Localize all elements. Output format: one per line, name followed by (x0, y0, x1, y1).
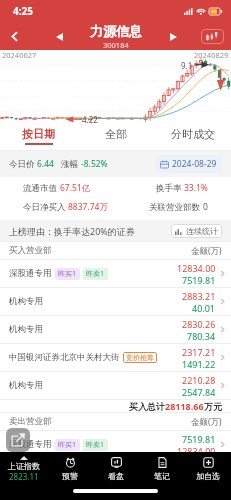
button[interactable]: 机构专用 (0, 316, 231, 344)
staticText: 今日价 (9, 158, 37, 170)
staticText: 分时成交 (171, 127, 215, 141)
staticText: 万元 (204, 401, 222, 412)
staticText: 看盘 (108, 471, 124, 481)
button[interactable]: 深股通专用 (0, 260, 231, 288)
staticText: 预警 (62, 471, 78, 481)
staticText: 67.51亿 (60, 182, 91, 194)
button[interactable]: 上证指数 (0, 452, 47, 486)
button[interactable]: 中国银河证券北京中关村大街 (0, 344, 231, 372)
staticText: 12834.00 (177, 262, 216, 274)
staticText: 昨买1 (58, 440, 77, 450)
staticText: 9.1 (181, 60, 193, 71)
staticText: 笔记 (154, 471, 170, 481)
staticText: 28118.66 (165, 400, 204, 412)
staticText: 2317.21 (182, 346, 216, 358)
button[interactable]: Previous stock (49, 27, 69, 47)
staticText: 780.34 (187, 330, 216, 342)
staticText: 昨买1 (58, 269, 77, 279)
staticText: 33.1% (184, 182, 208, 194)
staticText: 今日净买入 (23, 201, 68, 213)
staticText: 上榜理由：换手率达20%的证券 (9, 225, 135, 237)
staticText: 2823.11 (9, 471, 39, 482)
staticText: 6.44 (37, 158, 54, 170)
button[interactable]: 机构专用 (0, 372, 231, 400)
staticText: 40.01 (192, 302, 216, 314)
button[interactable]: 预警 (47, 452, 93, 486)
staticText: 7519.81 (182, 274, 216, 286)
staticText: 买入总计 (129, 401, 165, 412)
staticText: 4:25 (13, 4, 33, 18)
button[interactable]: 笔记 (139, 452, 185, 486)
staticText: 上证指数 (8, 461, 40, 471)
staticText: 按日期 (22, 127, 55, 141)
staticText: 金额(万) (191, 416, 222, 428)
staticText: 20240627 (2, 50, 37, 60)
staticText: 20240829 (194, 50, 229, 60)
button[interactable]: 分时成交 (154, 127, 231, 145)
staticText: 4.22 (82, 114, 98, 125)
staticText: 12834.00 (177, 445, 216, 457)
staticText: 机构专用 (9, 380, 43, 391)
staticText: 金额(万) (191, 245, 222, 257)
staticText: 连续统计 (186, 226, 218, 236)
staticText: 2024-08-29 (172, 158, 217, 170)
staticText: 深股通专用 (9, 268, 52, 279)
staticText: 深股通专用 (9, 439, 52, 450)
staticText: 涨幅 (61, 158, 81, 170)
staticText: 买入营业部 (9, 245, 52, 256)
staticText: 加自选 (196, 471, 220, 481)
staticText: 2547.84 (182, 386, 216, 398)
staticText: 昨卖1 (86, 440, 105, 450)
button[interactable]: 按日期 (0, 127, 77, 145)
staticText: 机构专用 (9, 296, 43, 307)
button[interactable]: 连续统计 (175, 226, 218, 236)
staticText: 昨卖1 (86, 269, 105, 279)
staticText: 300184 (103, 40, 129, 50)
staticText: 机构专用 (9, 324, 43, 335)
button[interactable]: Next stock (163, 27, 183, 47)
button[interactable]: Share (6, 428, 30, 452)
staticText: 卖出营业部 (9, 416, 52, 427)
staticText: 2210.28 (182, 374, 216, 386)
button[interactable]: Back (0, 22, 28, 50)
button[interactable]: 深股通专用 (0, 431, 231, 459)
button[interactable]: 加自选 (185, 452, 231, 486)
staticText: -8.52% (81, 158, 108, 170)
button[interactable]: 机构专用 (0, 288, 231, 316)
button[interactable]: 2024-08-29 (160, 158, 217, 170)
staticText: 2830.26 (182, 318, 216, 330)
staticText: 2883.21 (182, 290, 216, 302)
staticText: 7519.81 (182, 433, 216, 445)
staticText: 力源信息 (90, 23, 142, 39)
staticText: 竞价抢筹 (126, 353, 154, 362)
staticText: 换手率 (156, 182, 184, 194)
staticText: 1491.22 (182, 358, 216, 370)
staticText: 0 (203, 201, 208, 213)
staticText: 关联营业部数 (149, 201, 203, 213)
button[interactable]: K-line chart (201, 29, 224, 44)
staticText: 全部 (105, 127, 127, 141)
staticText: 流通市值 (23, 182, 60, 194)
button[interactable]: 看盘 (93, 452, 139, 486)
staticText: 中国银河证券北京中关村大街 (9, 352, 120, 363)
staticText: 8837.74万 (68, 201, 108, 213)
button[interactable]: 全部 (77, 127, 154, 145)
